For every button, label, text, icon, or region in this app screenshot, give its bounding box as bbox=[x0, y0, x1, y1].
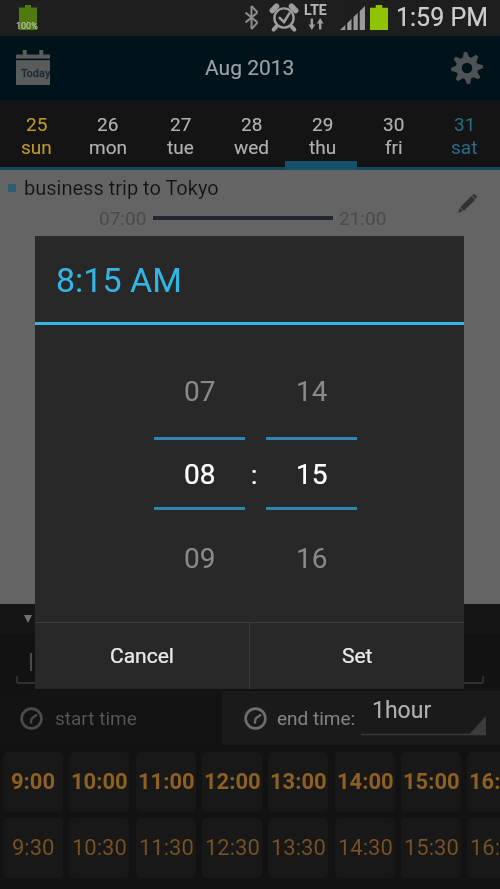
staticText: 1:59 PM bbox=[396, 3, 489, 32]
staticText: 9:00 bbox=[11, 769, 56, 795]
staticText: 10:00 bbox=[71, 769, 128, 795]
staticText: 11:00 bbox=[138, 769, 195, 795]
staticText: 15 bbox=[296, 458, 328, 491]
button[interactable]: Settings bbox=[440, 36, 492, 100]
button[interactable]: 15:00 bbox=[401, 752, 461, 812]
staticText: 8:15 AM bbox=[56, 260, 182, 300]
staticText: 14:30 bbox=[338, 835, 393, 861]
staticText: 14:00 bbox=[337, 769, 394, 795]
staticText: 10:30 bbox=[72, 835, 127, 861]
staticText: 15:30 bbox=[404, 835, 459, 861]
button[interactable]: 27 bbox=[144, 100, 216, 170]
button[interactable]: 9:30 bbox=[3, 818, 63, 878]
button[interactable]: 14:00 bbox=[335, 752, 395, 812]
button[interactable]: 30 bbox=[358, 100, 429, 170]
button[interactable]: 16:00 bbox=[467, 752, 500, 812]
button[interactable]: 11:30 bbox=[136, 818, 196, 878]
button[interactable]: 10:00 bbox=[69, 752, 129, 812]
button[interactable]: 12:00 bbox=[202, 752, 262, 812]
staticText: 29 bbox=[312, 113, 334, 135]
staticText: 07:00 bbox=[99, 207, 147, 229]
staticText: 100% bbox=[16, 21, 38, 32]
button[interactable]: 9:00 bbox=[3, 752, 63, 812]
staticText: business trip to Tokyo bbox=[24, 176, 219, 199]
staticText: 27 bbox=[170, 113, 192, 135]
staticText: 26 bbox=[97, 113, 119, 135]
staticText: 28 bbox=[241, 113, 263, 135]
staticText: sat bbox=[451, 136, 478, 158]
staticText: 12:30 bbox=[205, 835, 260, 861]
staticText: 9:30 bbox=[12, 835, 55, 861]
staticText: end time: bbox=[277, 707, 356, 729]
staticText: thu bbox=[309, 136, 337, 158]
button[interactable]: 12:30 bbox=[202, 818, 262, 878]
staticText: 16 bbox=[296, 542, 328, 575]
staticText: sun bbox=[21, 136, 52, 158]
staticText: 13:00 bbox=[270, 769, 327, 795]
staticText: 12:00 bbox=[204, 769, 261, 795]
staticText: Aug 2013 bbox=[205, 56, 295, 81]
button[interactable]: Cancel bbox=[35, 623, 249, 689]
button[interactable]: 13:30 bbox=[268, 818, 328, 878]
button[interactable]: start time bbox=[0, 691, 222, 745]
staticText: 15:00 bbox=[403, 769, 460, 795]
staticText: 25 bbox=[26, 113, 48, 135]
staticText: 09 bbox=[184, 542, 216, 575]
button[interactable]: 29 bbox=[287, 100, 358, 170]
button[interactable]: Duration bbox=[358, 691, 488, 745]
staticText: Set bbox=[342, 644, 373, 669]
staticText: 16:00 bbox=[469, 769, 500, 795]
button[interactable]: Repeat bbox=[4, 606, 40, 632]
staticText: 31 bbox=[454, 113, 476, 135]
button[interactable]: end time: bbox=[222, 691, 356, 745]
staticText: 14 bbox=[296, 375, 328, 408]
staticText: 21:00 bbox=[339, 207, 387, 229]
staticText: tue bbox=[167, 136, 194, 158]
staticText: fri bbox=[385, 136, 403, 158]
staticText: mon bbox=[89, 136, 127, 158]
button[interactable]: Today bbox=[8, 36, 58, 100]
button[interactable]: 26 bbox=[72, 100, 144, 170]
button[interactable]: 25 bbox=[0, 100, 72, 170]
staticText: 30 bbox=[383, 113, 405, 135]
button[interactable]: Set bbox=[250, 623, 464, 689]
staticText: : bbox=[251, 460, 258, 490]
button[interactable]: 16:30 bbox=[467, 818, 500, 878]
staticText: Today bbox=[21, 67, 51, 80]
button[interactable]: 31 bbox=[429, 100, 500, 170]
staticText: wed bbox=[234, 136, 270, 158]
button[interactable]: 10:30 bbox=[69, 818, 129, 878]
staticText: 13:30 bbox=[271, 835, 326, 861]
staticText: 11:30 bbox=[139, 835, 194, 861]
staticText: 1hour bbox=[372, 697, 432, 724]
staticText: LTE bbox=[304, 2, 327, 18]
button[interactable]: 13:00 bbox=[268, 752, 328, 812]
button[interactable]: 11:00 bbox=[136, 752, 196, 812]
staticText: 16:30 bbox=[470, 835, 500, 861]
button[interactable]: 14:30 bbox=[335, 818, 395, 878]
button[interactable]: Edit bbox=[449, 185, 485, 221]
staticText: start time bbox=[55, 707, 137, 729]
staticText: Cancel bbox=[110, 644, 174, 669]
button[interactable]: 15:30 bbox=[401, 818, 461, 878]
staticText: 07 bbox=[184, 375, 216, 408]
button[interactable]: 28 bbox=[216, 100, 287, 170]
staticText: 08 bbox=[184, 458, 216, 491]
